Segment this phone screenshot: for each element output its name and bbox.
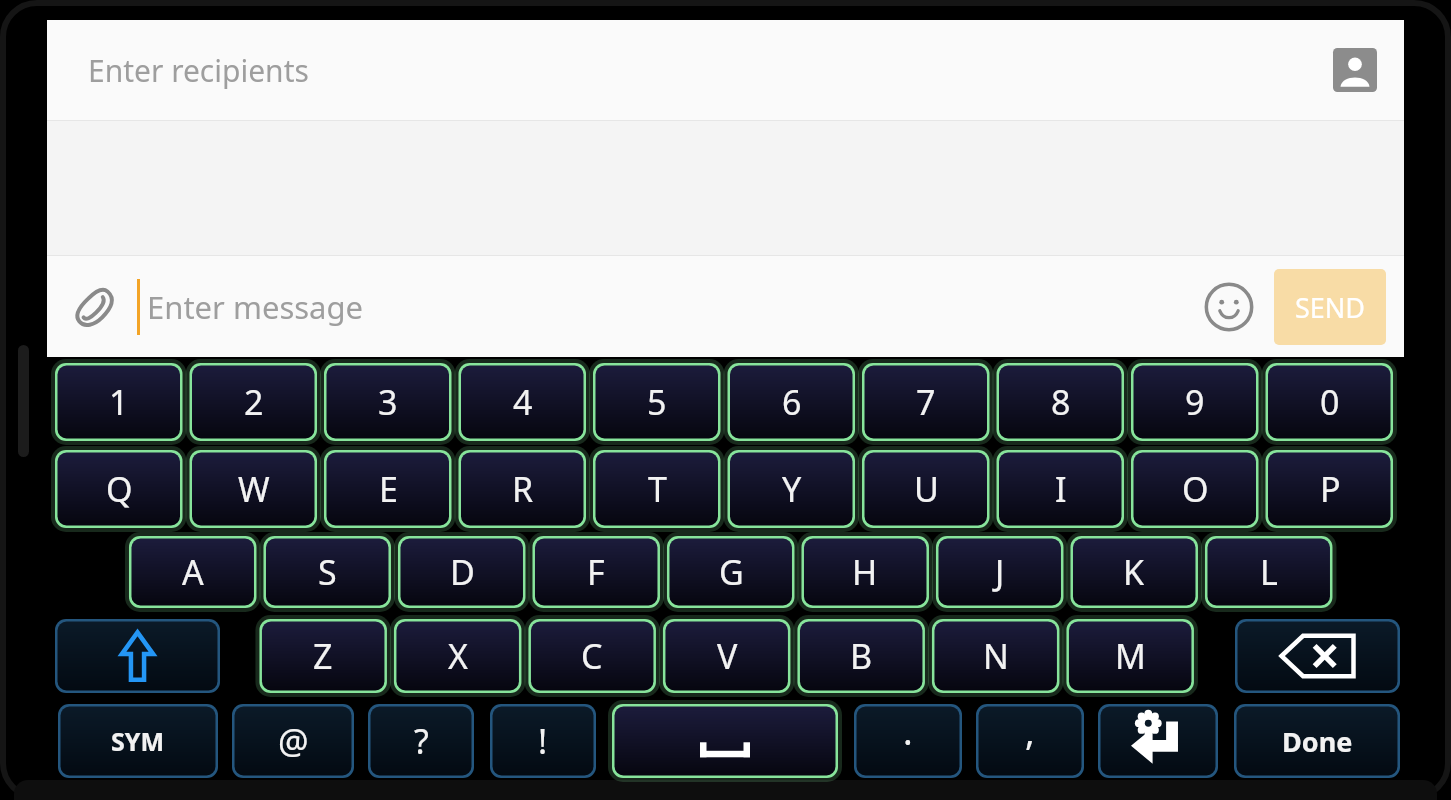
staticText: Done (1282, 723, 1353, 760)
staticText: N (983, 633, 1009, 679)
button[interactable]: N (932, 619, 1060, 693)
button[interactable]: ? (368, 704, 474, 778)
button[interactable]: Attach file (69, 280, 123, 334)
button[interactable]: Z (259, 619, 387, 693)
staticText: B (850, 633, 873, 679)
button[interactable]: Choose contact (1332, 47, 1378, 93)
staticText: SEND (1295, 289, 1366, 326)
button[interactable]: P (1266, 450, 1394, 528)
button[interactable]: SEND (1274, 269, 1386, 345)
button[interactable]: I (997, 450, 1125, 528)
button[interactable]: L (1205, 536, 1333, 608)
button[interactable]: U (862, 450, 990, 528)
button[interactable]: Q (55, 450, 183, 528)
staticText: F (587, 549, 605, 595)
button[interactable]: Shift (55, 619, 220, 693)
button[interactable]: 7 (862, 363, 990, 441)
staticText: C (581, 633, 603, 679)
button[interactable]: F (532, 536, 660, 608)
button[interactable]: H (801, 536, 929, 608)
staticText: Enter message (147, 286, 364, 328)
staticText: 6 (782, 379, 802, 425)
staticText: 7 (916, 379, 936, 425)
staticText: V (717, 633, 738, 679)
staticText: R (512, 466, 534, 512)
button[interactable]: V (663, 619, 791, 693)
button[interactable]: Backspace (1235, 619, 1400, 693)
staticText: E (379, 466, 398, 512)
staticText: Z (313, 633, 333, 679)
button[interactable]: , (976, 704, 1084, 778)
staticText: X (448, 633, 468, 679)
button[interactable]: M (1066, 619, 1194, 693)
button[interactable]: 3 (324, 363, 452, 441)
staticText: G (719, 549, 744, 595)
button[interactable]: D (398, 536, 526, 608)
button[interactable]: 5 (593, 363, 721, 441)
staticText: 1 (109, 379, 129, 425)
button[interactable]: Enter (1098, 704, 1218, 778)
button[interactable]: @ (232, 704, 354, 778)
button[interactable]: 1 (55, 363, 183, 441)
staticText: . (903, 707, 913, 756)
staticText: ! (538, 718, 548, 764)
staticText: M (1115, 633, 1146, 679)
button[interactable]: B (797, 619, 925, 693)
button[interactable]: Enter recipients (47, 20, 1404, 120)
button[interactable]: . (854, 704, 962, 778)
button[interactable]: Enter message (137, 271, 1200, 343)
button[interactable]: A (129, 536, 257, 608)
button[interactable]: O (1131, 450, 1259, 528)
button[interactable]: 8 (997, 363, 1125, 441)
button[interactable]: Y (728, 450, 856, 528)
button[interactable]: E (324, 450, 452, 528)
button[interactable]: S (263, 536, 391, 608)
staticText: H (852, 549, 878, 595)
staticText: P (1320, 466, 1341, 512)
staticText: D (450, 549, 475, 595)
staticText: O (1182, 466, 1209, 512)
button[interactable]: C (528, 619, 656, 693)
staticText: 2 (244, 379, 264, 425)
staticText: 5 (647, 379, 667, 425)
staticText: 4 (513, 379, 533, 425)
staticText: W (238, 466, 270, 512)
staticText: , (1025, 707, 1035, 756)
button[interactable]: Insert emoji (1200, 278, 1258, 336)
staticText: 0 (1320, 379, 1340, 425)
staticText: 8 (1051, 379, 1071, 425)
button[interactable]: X (394, 619, 522, 693)
button[interactable]: 9 (1131, 363, 1259, 441)
button[interactable]: Space (612, 704, 838, 778)
staticText: SYM (111, 724, 165, 758)
staticText: U (914, 466, 939, 512)
button[interactable]: ! (490, 704, 596, 778)
staticText: L (1260, 549, 1278, 595)
staticText: @ (278, 718, 309, 764)
button[interactable]: 4 (459, 363, 587, 441)
button[interactable]: SYM (58, 704, 218, 778)
button[interactable]: Done (1234, 704, 1400, 778)
staticText: T (648, 466, 667, 512)
button[interactable]: J (936, 536, 1064, 608)
button[interactable]: 6 (728, 363, 856, 441)
button[interactable]: R (459, 450, 587, 528)
button[interactable]: W (190, 450, 318, 528)
staticText: 9 (1185, 379, 1205, 425)
staticText: A (182, 549, 204, 595)
staticText: K (1123, 549, 1145, 595)
button[interactable]: T (593, 450, 721, 528)
staticText: Y (782, 466, 802, 512)
button[interactable]: K (1070, 536, 1198, 608)
staticText: 3 (378, 379, 398, 425)
staticText: Q (106, 466, 133, 512)
staticText: I (1055, 466, 1067, 512)
staticText: ? (414, 718, 429, 764)
staticText: S (318, 549, 337, 595)
staticText: Enter recipients (88, 50, 1332, 91)
button[interactable]: 2 (190, 363, 318, 441)
button[interactable]: G (667, 536, 795, 608)
staticText: J (995, 549, 1005, 595)
button[interactable]: 0 (1266, 363, 1394, 441)
